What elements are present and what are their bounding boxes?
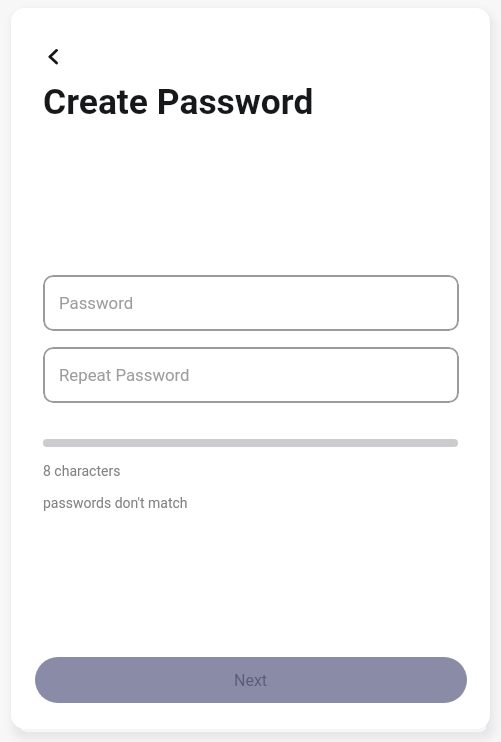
staticText: passwords don't match bbox=[43, 495, 188, 511]
button[interactable]: Back bbox=[38, 41, 66, 69]
staticText: Next bbox=[234, 671, 268, 690]
staticText: Password bbox=[59, 293, 134, 313]
button[interactable]: Password bbox=[43, 275, 459, 331]
button[interactable]: Repeat Password bbox=[43, 347, 459, 403]
staticText: Repeat Password bbox=[59, 365, 190, 385]
button[interactable]: Next bbox=[35, 657, 467, 703]
staticText: 8 characters bbox=[43, 463, 121, 479]
staticText: Create Password bbox=[43, 81, 314, 122]
